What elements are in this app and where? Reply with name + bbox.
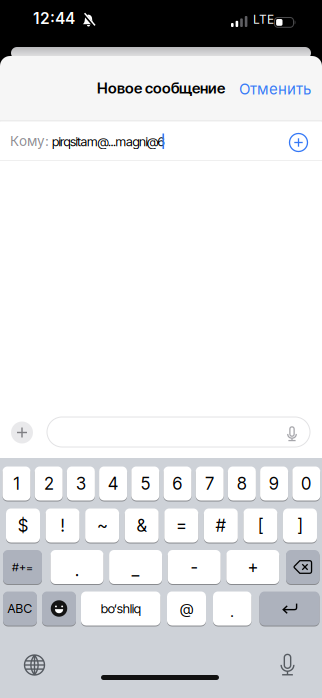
staticText: 7 [205,473,214,494]
staticText: #+= [12,560,33,574]
button[interactable]: #+= [3,549,42,584]
button[interactable]: . [213,591,251,626]
staticText: 2 [44,473,53,494]
staticText: 9 [269,473,279,494]
button[interactable]: . [50,549,103,584]
button[interactable]: [ [243,508,277,543]
button[interactable]: 7 [196,466,224,501]
button[interactable]: 0 [292,466,320,501]
button[interactable]: 3 [67,466,95,501]
staticText: - [191,557,198,577]
button[interactable]: $ [6,508,40,543]
staticText: ] [297,515,302,536]
button[interactable]: Диктовка [281,423,303,445]
staticText: _ [132,559,139,579]
staticText: . [75,560,79,580]
button[interactable]: # [204,508,238,543]
staticText: # [216,515,226,536]
button[interactable]: + [226,549,279,584]
button[interactable]: ! [46,508,80,543]
staticText: 0 [301,473,311,494]
button[interactable]: bo‘shliq [81,591,160,626]
button[interactable]: 5 [131,466,159,501]
staticText: 4 [108,473,118,494]
staticText: pirqsitam@...magni@6 [52,134,164,149]
staticText: 8 [237,473,247,494]
button[interactable]: @ [167,591,206,626]
staticText: Отменить [239,80,311,98]
staticText: = [176,515,186,536]
button[interactable]: 9 [260,466,288,501]
button[interactable]: 6 [163,466,191,501]
staticText: @ [180,599,193,617]
button[interactable]: Эмодзи [42,591,76,626]
button[interactable]: = [164,508,198,543]
button[interactable]: Ввод [259,591,319,626]
button[interactable]: Следующая клавиатура [17,648,51,682]
staticText: 3 [76,473,86,494]
button[interactable]: 2 [35,466,63,501]
staticText: . [230,602,234,620]
staticText: Новое сообщение [97,79,225,97]
staticText: & [137,515,147,536]
button[interactable]: Приложения [11,421,33,443]
button[interactable]: Удалить [286,549,319,584]
button[interactable]: 1 [2,466,30,501]
button[interactable]: ] [283,508,317,543]
staticText: $ [18,515,28,536]
staticText: bo‘shliq [101,601,141,616]
button[interactable]: Диктовка [270,648,304,682]
button[interactable]: _ [109,549,162,584]
staticText: 6 [172,473,182,494]
button[interactable]: - [168,549,221,584]
button[interactable]: 8 [228,466,256,501]
staticText: [ [258,515,263,536]
staticText: LTE [253,12,274,26]
button[interactable]: Добавить контакт [283,127,313,157]
staticText: ABC [7,601,32,616]
staticText: ! [61,515,65,536]
button[interactable]: ABC [3,591,37,626]
staticText: 1 [13,473,19,494]
button[interactable]: ~ [85,508,119,543]
staticText: 12:44 [33,9,75,28]
staticText: + [248,557,258,577]
staticText: Кому: [10,133,49,149]
staticText: ~ [97,515,107,536]
button[interactable]: & [125,508,159,543]
staticText: 5 [141,473,150,494]
button[interactable]: Отменить [221,74,311,104]
button[interactable]: 4 [99,466,127,501]
